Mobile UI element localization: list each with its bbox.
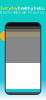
staticText: healthy habits — [18, 5, 46, 11]
staticText: A better way to care for your body — [0, 11, 46, 14]
staticText: Everyday — [0, 5, 17, 11]
